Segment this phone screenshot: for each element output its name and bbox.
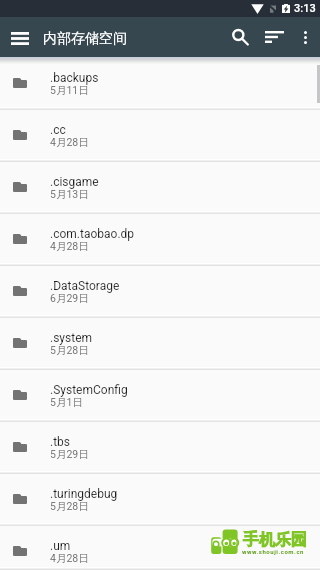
button[interactable]: Sort — [257, 17, 291, 57]
staticText: .cc — [50, 123, 66, 137]
staticText: .tbs — [50, 435, 71, 449]
staticText: 5月28日 — [50, 500, 89, 513]
button[interactable]: .tbs — [0, 422, 320, 474]
button[interactable]: .backups — [0, 58, 320, 110]
button[interactable]: .system — [0, 318, 320, 370]
staticText: 5月13日 — [50, 188, 89, 201]
staticText: .com.taobao.dp — [50, 227, 135, 241]
staticText: 内部存储空间 — [43, 30, 127, 48]
button[interactable]: .turingdebug — [0, 474, 320, 526]
button[interactable]: .SystemConfig — [0, 370, 320, 422]
staticText: 5月1日 — [50, 396, 83, 409]
staticText: 5月29日 — [50, 448, 89, 461]
staticText: .backups — [50, 71, 99, 85]
staticText: www.shouji.com.cn — [242, 548, 304, 555]
staticText: 4月28日 — [50, 240, 89, 253]
button[interactable]: More options — [291, 17, 320, 57]
staticText: .cisgame — [50, 175, 99, 189]
staticText: 5月11日 — [50, 84, 89, 97]
staticText: 3:13 — [294, 2, 316, 15]
staticText: .SystemConfig — [50, 383, 128, 397]
staticText: .DataStorage — [50, 279, 120, 293]
staticText: 5月28日 — [50, 344, 89, 357]
staticText: 4月28日 — [50, 136, 89, 149]
staticText: .system — [50, 331, 93, 345]
staticText: .um — [50, 539, 71, 553]
staticText: .turingdebug — [50, 487, 118, 501]
staticText: 6月29日 — [50, 292, 89, 305]
staticText: 手机乐园 — [243, 530, 307, 550]
button[interactable]: .cc — [0, 110, 320, 162]
button[interactable]: .DataStorage — [0, 266, 320, 318]
button[interactable]: Search — [222, 17, 257, 57]
button[interactable]: .com.taobao.dp — [0, 214, 320, 266]
button[interactable]: .um — [0, 526, 320, 570]
button[interactable]: Menu — [0, 17, 41, 57]
staticText: 4月28日 — [50, 552, 89, 565]
button[interactable]: .cisgame — [0, 162, 320, 214]
